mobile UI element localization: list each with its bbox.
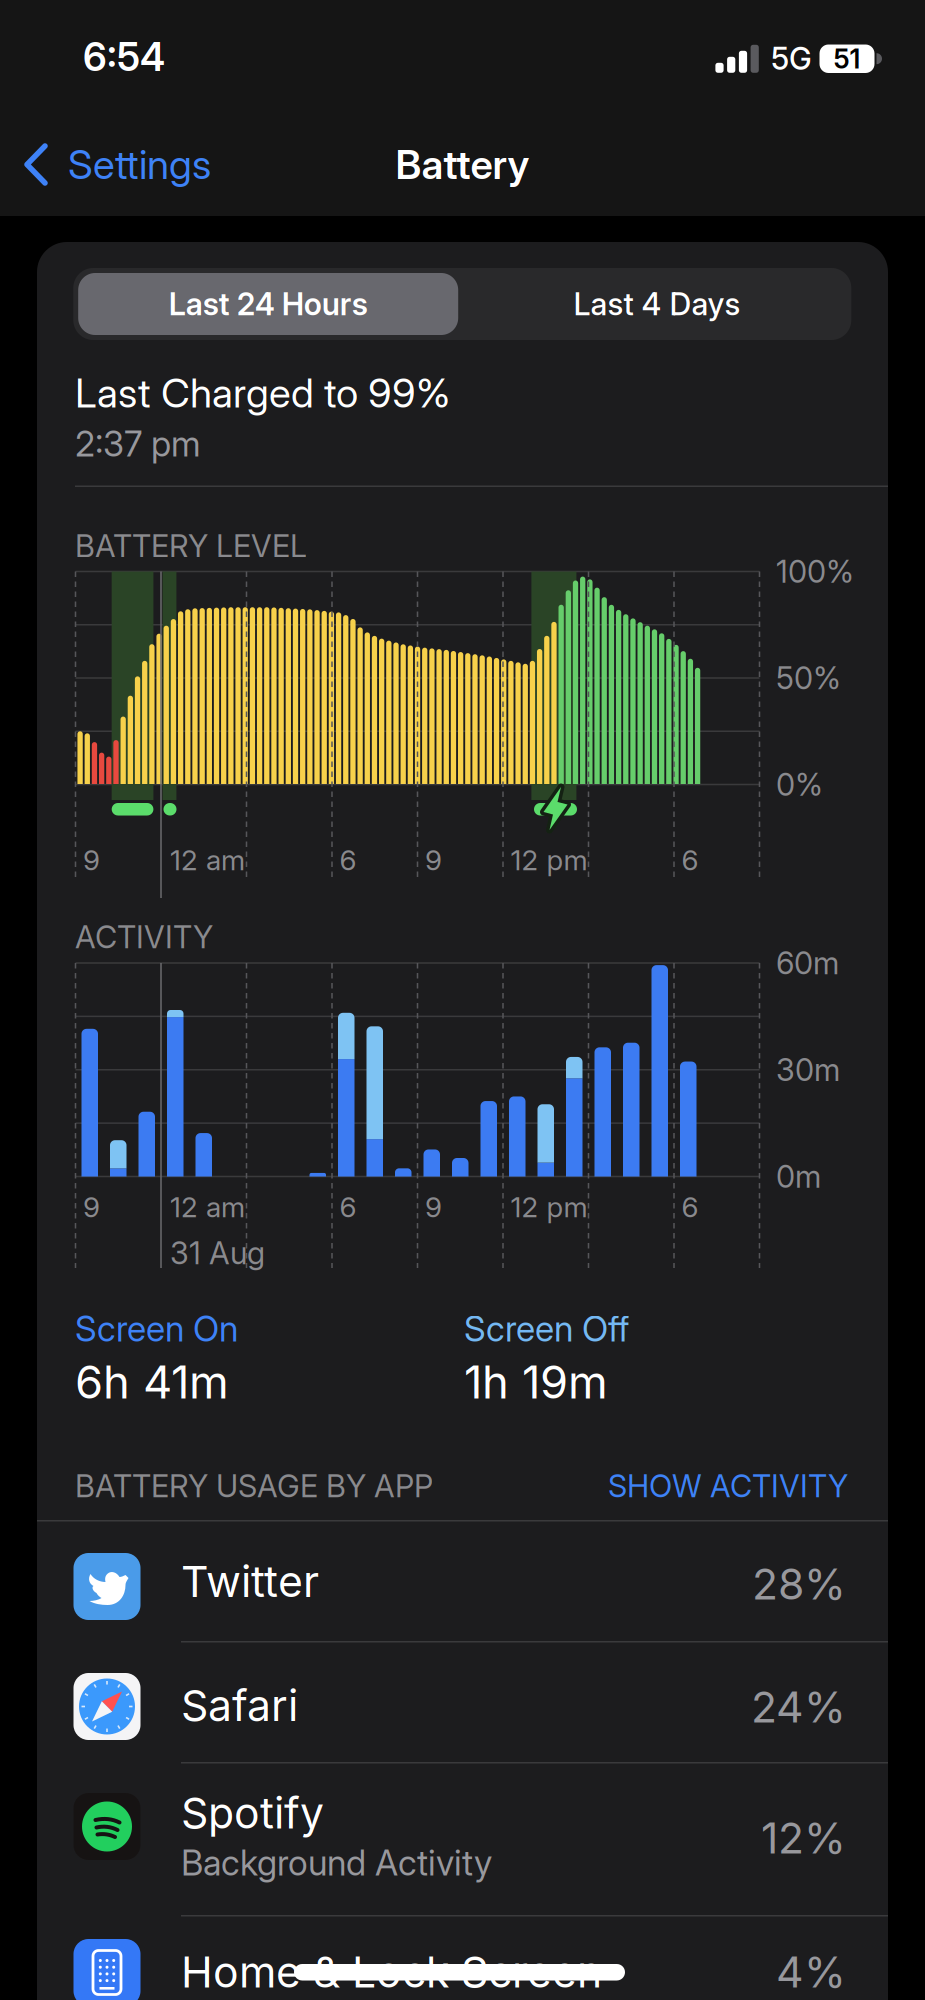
staticText: Last 24 Hours <box>169 286 368 322</box>
staticText: 9 <box>83 843 100 876</box>
staticText: 6 <box>681 1190 698 1223</box>
staticText: 2:37 pm <box>75 424 201 464</box>
staticText: Safari <box>181 1680 298 1731</box>
staticText: BATTERY USAGE BY APP <box>75 1468 433 1504</box>
staticText: 1h 19m <box>464 1355 608 1409</box>
button[interactable]: SHOW ACTIVITY <box>0 0 400 60</box>
staticText: 28% <box>752 1559 846 1609</box>
staticText: 60m <box>776 945 839 981</box>
staticText: 9 <box>425 1190 442 1223</box>
staticText: Screen On <box>75 1309 238 1349</box>
staticText: ACTIVITY <box>75 919 213 955</box>
staticText: 50% <box>776 660 841 696</box>
staticText: Twitter <box>181 1556 319 1607</box>
staticText: Settings <box>68 141 211 188</box>
staticText: Screen Off <box>464 1309 629 1349</box>
staticText: 6:54 <box>83 34 165 80</box>
staticText: 6 <box>681 843 698 876</box>
staticText: 24% <box>751 1682 846 1732</box>
staticText: 4% <box>776 1947 846 1997</box>
staticText: 9 <box>425 843 442 876</box>
button[interactable]: Last 4 Days <box>467 273 847 335</box>
staticText: Home & Lock Screen <box>181 1947 602 1997</box>
staticText: SHOW ACTIVITY <box>608 1468 848 1504</box>
staticText: 0% <box>776 766 823 803</box>
button[interactable]: Spotify <box>37 1763 888 1916</box>
staticText: 12 pm <box>510 843 587 876</box>
staticText: Background Activity <box>181 1843 492 1883</box>
staticText: 100% <box>776 553 854 590</box>
staticText: 12 pm <box>510 1190 587 1223</box>
staticText: Last Charged to 99% <box>75 369 450 417</box>
staticText: 12 am <box>170 843 245 876</box>
staticText: 9 <box>83 1190 100 1223</box>
staticText: Last 4 Days <box>573 286 740 322</box>
staticText: 12 am <box>170 1190 245 1223</box>
staticText: 12% <box>761 1813 846 1863</box>
staticText: 0m <box>776 1158 821 1195</box>
staticText: 30m <box>776 1052 840 1088</box>
staticText: BATTERY LEVEL <box>75 528 307 564</box>
button[interactable]: Home & Lock Screen <box>37 1915 888 2000</box>
button[interactable]: Twitter <box>37 1521 888 1641</box>
staticText: 51 <box>833 43 860 74</box>
staticText: 6h 41m <box>75 1355 229 1409</box>
staticText: 6 <box>339 1190 356 1223</box>
staticText: Spotify <box>181 1788 324 1838</box>
staticText: Battery <box>395 141 529 188</box>
staticText: 31 Aug <box>170 1235 265 1271</box>
button[interactable]: Safari <box>37 1642 888 1762</box>
button[interactable]: Back to Settings <box>0 0 230 216</box>
button[interactable]: Last 24 Hours <box>78 273 458 335</box>
staticText: 6 <box>339 843 356 876</box>
staticText: 5G <box>771 40 812 77</box>
